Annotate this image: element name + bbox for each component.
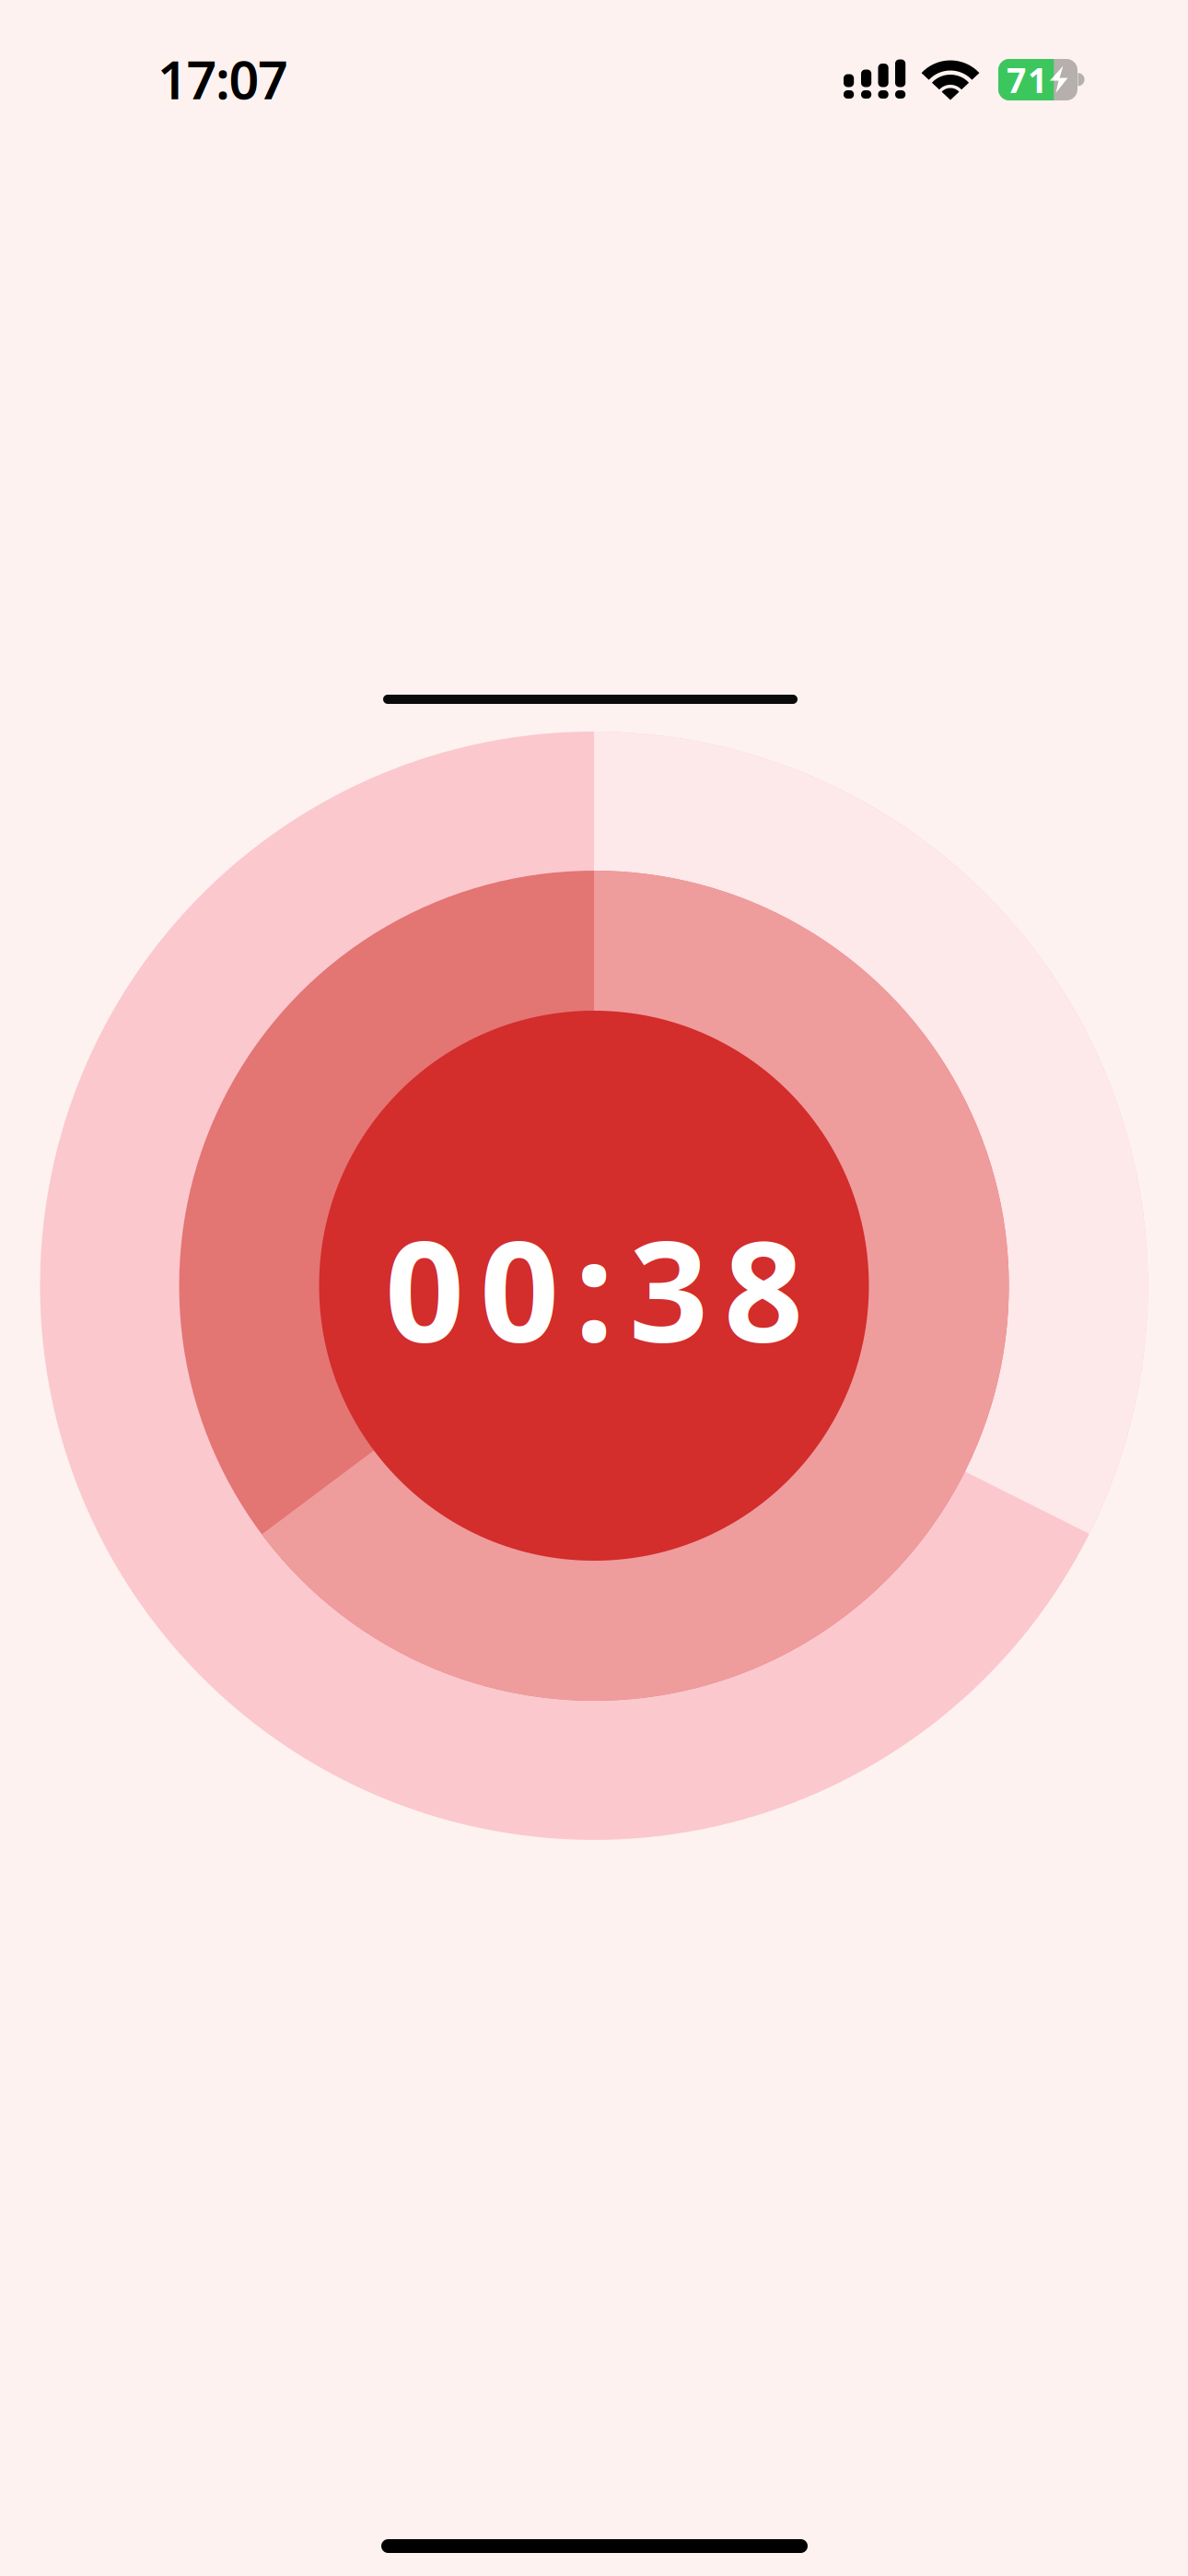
staticText: 00:38 [385,1195,803,1380]
button[interactable]: Pause timer [319,1011,869,1561]
staticText: 17:07 [157,44,288,114]
staticText: 71 [1007,57,1047,103]
